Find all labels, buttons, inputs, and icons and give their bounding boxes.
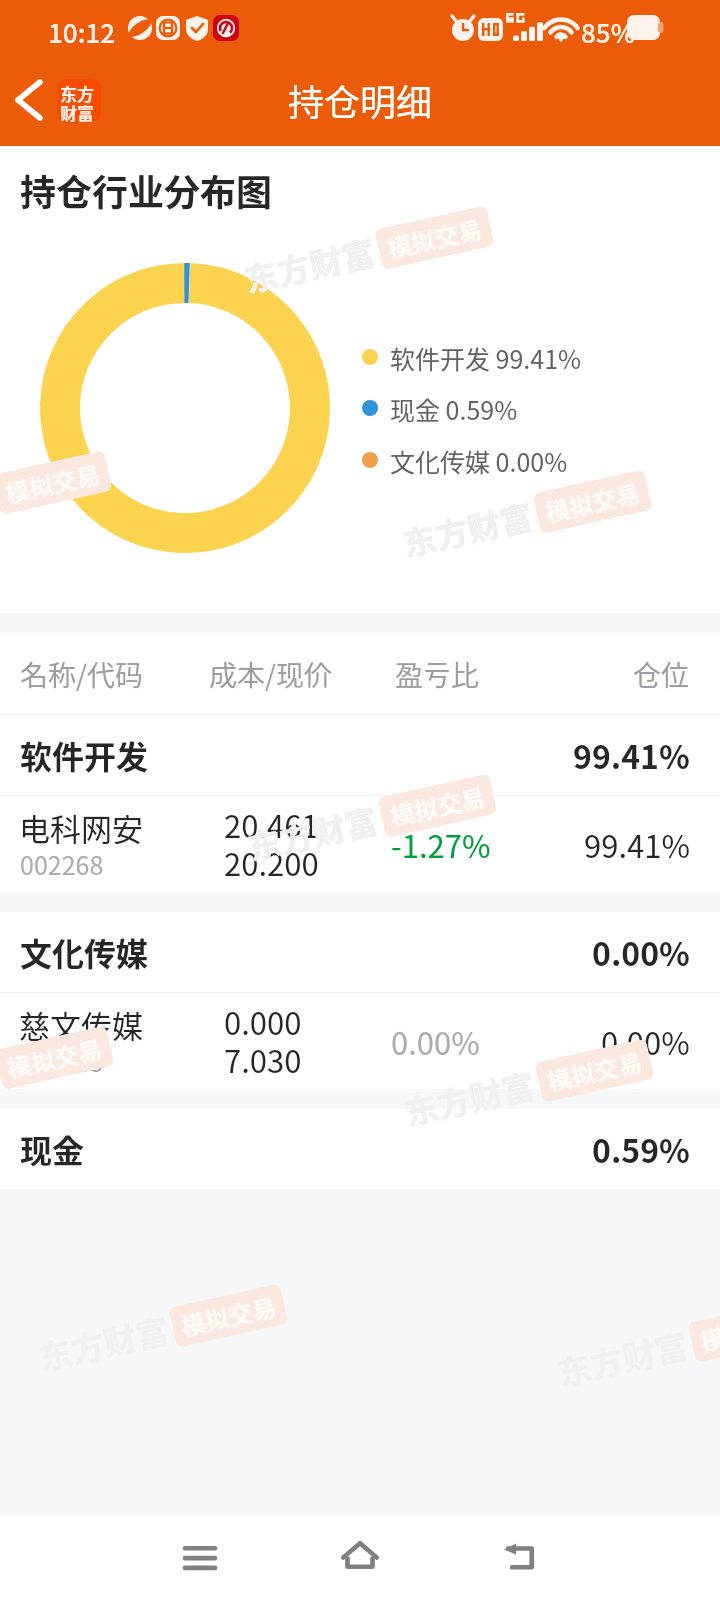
staticText: 20.200 <box>224 840 319 885</box>
staticText: 财富 <box>60 100 94 122</box>
staticText: 东方财富 <box>400 1060 539 1136</box>
staticText: 东方财富 <box>243 795 382 871</box>
button[interactable]: 现金 <box>0 1109 720 1189</box>
staticText: 85% <box>581 13 636 51</box>
staticText: 99.41% <box>573 732 690 778</box>
button[interactable]: 文化传媒 <box>0 912 720 992</box>
staticText: 东方财富 <box>34 1305 173 1381</box>
staticText: 东方财富 <box>400 1060 539 1136</box>
staticText: 模拟交易 <box>2 455 103 510</box>
staticText: 东方财富 <box>240 227 379 303</box>
staticText: 文化传媒 0.00% <box>390 443 568 479</box>
staticText: 东方财富 <box>553 1320 692 1396</box>
staticText: 东方财富 <box>400 1060 539 1136</box>
staticText: 慈文传媒 <box>19 1002 143 1047</box>
staticText: 模拟交易 <box>4 1030 105 1085</box>
staticText: 东方财富 <box>398 491 537 567</box>
staticText: 模拟交易 <box>697 1303 720 1358</box>
staticText: 模拟交易 <box>387 778 488 833</box>
staticText: 东方财富 <box>240 227 379 303</box>
button[interactable]: 软件开发 <box>0 715 720 795</box>
staticText: 模拟交易 <box>544 1043 645 1098</box>
staticText: 模拟交易 <box>384 210 485 265</box>
staticText: 模拟交易 <box>697 1303 720 1358</box>
staticText: 模拟交易 <box>544 1043 645 1098</box>
button[interactable]: 电科网安 <box>0 796 720 892</box>
staticText: 模拟交易 <box>178 1288 279 1343</box>
staticText: 东方财富 <box>34 1305 173 1381</box>
staticText: 东方财富 <box>243 795 382 871</box>
staticText: 软件开发 99.41% <box>390 340 582 376</box>
staticText: 软件开发 <box>20 732 149 778</box>
staticText: 东方财富 <box>398 491 537 567</box>
staticText: 东方财富 <box>240 227 379 303</box>
staticText: 模拟交易 <box>387 778 488 833</box>
staticText: 20.461 <box>224 802 319 847</box>
button[interactable]: East Money <box>57 79 101 122</box>
staticText: 持仓行业分布图 <box>20 164 273 216</box>
staticText: 现金 0.59% <box>390 391 518 427</box>
staticText: 东方财富 <box>553 1320 692 1396</box>
staticText: 模拟交易 <box>384 210 485 265</box>
staticText: 模拟交易 <box>387 778 488 833</box>
staticText: 002268 <box>20 846 104 882</box>
staticText: 模拟交易 <box>542 474 643 529</box>
staticText: 东方财富 <box>34 1305 173 1381</box>
staticText: 东方财富 <box>243 795 382 871</box>
staticText: 模拟交易 <box>697 1303 720 1358</box>
staticText: 东方财富 <box>553 1320 692 1396</box>
staticText: 模拟交易 <box>4 1030 105 1085</box>
staticText: 文化传媒 <box>20 929 149 975</box>
staticText: 模拟交易 <box>2 455 103 510</box>
staticText: 模拟交易 <box>178 1288 279 1343</box>
button[interactable]: Recent apps <box>160 1524 240 1592</box>
staticText: 10:12 <box>48 13 116 51</box>
staticText: 0.00% <box>601 1019 690 1064</box>
staticText: 成本/现价 <box>209 654 332 695</box>
staticText: 0.00% <box>592 929 690 975</box>
button[interactable]: Back <box>480 1524 560 1592</box>
staticText: 仓位 <box>633 654 690 695</box>
staticText: 模拟交易 <box>178 1288 279 1343</box>
staticText: 模拟交易 <box>384 210 485 265</box>
staticText: 持仓明细 <box>288 74 433 126</box>
staticText: 现金 <box>20 1126 85 1172</box>
button[interactable]: Back <box>0 64 62 132</box>
staticText: 东方 <box>60 81 94 106</box>
staticText: 模拟交易 <box>2 455 103 510</box>
staticText: 电科网安 <box>19 805 143 850</box>
staticText: -1.27% <box>391 822 491 867</box>
staticText: 名称/代码 <box>20 654 143 695</box>
staticText: 7.030 <box>224 1037 302 1082</box>
staticText: 东方财富 <box>398 491 537 567</box>
staticText: 0.00% <box>391 1019 480 1064</box>
staticText: 模拟交易 <box>542 474 643 529</box>
button[interactable]: 慈文传媒 <box>0 993 720 1089</box>
button[interactable]: Home <box>320 1524 400 1592</box>
staticText: 模拟交易 <box>4 1030 105 1085</box>
staticText: 模拟交易 <box>542 474 643 529</box>
staticText: 盈亏比 <box>395 654 480 695</box>
staticText: 模拟交易 <box>544 1043 645 1098</box>
staticText: 002343 <box>20 1043 104 1079</box>
staticText: 99.41% <box>584 822 690 867</box>
staticText: 0.000 <box>224 999 302 1044</box>
staticText: 0.59% <box>592 1126 690 1172</box>
